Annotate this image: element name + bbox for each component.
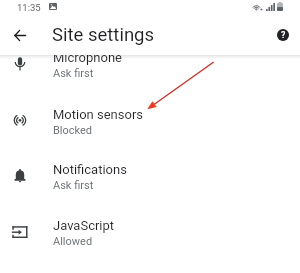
staticText: Ask first — [53, 179, 94, 192]
button[interactable]: JavaScript permission — [0, 206, 300, 262]
staticText: JavaScript — [53, 218, 115, 233]
button[interactable]: Help — [271, 23, 295, 47]
staticText: 11:35 — [17, 2, 41, 13]
staticText: Microphone — [53, 50, 122, 65]
staticText: Site settings — [52, 24, 155, 46]
button[interactable]: Navigate up — [6, 21, 34, 49]
button[interactable]: Microphone permission — [0, 38, 300, 94]
staticText: Motion sensors — [53, 107, 144, 122]
staticText: Blocked — [53, 124, 93, 137]
staticText: Allowed — [53, 235, 93, 248]
staticText: Notifications — [53, 162, 127, 177]
button[interactable]: Notifications permission — [0, 150, 300, 206]
staticText: ? — [281, 30, 286, 41]
button[interactable]: Motion sensors permission — [0, 95, 300, 151]
staticText: Ask first — [53, 67, 94, 80]
